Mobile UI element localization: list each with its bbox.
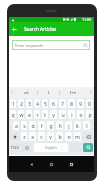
staticText: o (79, 111, 83, 118)
button[interactable]: I (38, 87, 59, 98)
button[interactable]: 8 (68, 99, 75, 108)
staticText: m (75, 133, 80, 140)
staticText: p (88, 111, 92, 118)
button[interactable]: 4 (34, 99, 40, 108)
staticText: I (48, 90, 50, 96)
staticText: ok (24, 90, 29, 96)
button[interactable]: 9 (77, 99, 84, 108)
staticText: 5 (44, 100, 47, 107)
staticText: e (28, 111, 31, 118)
button[interactable]: ?123 (10, 143, 19, 152)
staticText: w (19, 111, 24, 118)
button[interactable]: 2 (18, 99, 24, 108)
staticText: x (31, 133, 34, 140)
staticText: b (58, 133, 62, 140)
staticText: s (23, 122, 26, 129)
button[interactable]: u (59, 110, 66, 119)
staticText: 8 (70, 100, 73, 107)
staticText: 9 (79, 100, 82, 107)
staticText: z (23, 133, 26, 140)
staticText: 0 (88, 100, 91, 107)
staticText: h (58, 122, 62, 129)
button[interactable]: ok (16, 87, 37, 98)
staticText: 6 (52, 100, 55, 107)
button[interactable]: b (56, 132, 63, 141)
button[interactable]: x (29, 132, 36, 141)
staticText: d (31, 122, 35, 129)
button[interactable]: I'm (60, 87, 87, 98)
button[interactable]: v (47, 132, 54, 141)
button[interactable]: Previous suggestions (9, 87, 16, 98)
staticText: English (45, 145, 57, 150)
button[interactable]: i (68, 110, 75, 119)
button[interactable]: z (21, 132, 27, 141)
staticText: f (41, 122, 43, 129)
staticText: I'm (70, 90, 77, 96)
button[interactable]: y (50, 110, 57, 119)
staticText: a (15, 122, 18, 129)
button[interactable]: w (18, 110, 24, 119)
button[interactable]: j (65, 121, 72, 130)
staticText: i (71, 111, 73, 118)
button[interactable]: t (42, 110, 48, 119)
staticText: j (68, 122, 70, 129)
staticText: 4 (36, 100, 39, 107)
button[interactable]: h (56, 121, 63, 130)
button[interactable]: Back (9, 22, 20, 36)
button[interactable]: l (83, 121, 90, 130)
button[interactable]: d (29, 121, 36, 130)
button[interactable]: q (10, 110, 16, 119)
button[interactable]: 6 (50, 99, 57, 108)
staticText: r (36, 111, 39, 118)
button[interactable]: Search (83, 143, 93, 152)
button[interactable]: f (38, 121, 45, 130)
button[interactable]: s (21, 121, 27, 130)
staticText: 1 (12, 100, 15, 107)
button[interactable]: 7 (59, 99, 66, 108)
button[interactable]: p (86, 110, 93, 119)
button[interactable]: 1 (10, 99, 16, 108)
button[interactable]: o (77, 110, 84, 119)
button[interactable]: Backspace (83, 132, 93, 141)
staticText: k (76, 122, 79, 129)
staticText: 7 (61, 100, 64, 107)
button[interactable]: k (74, 121, 81, 130)
staticText: q (11, 111, 15, 118)
button[interactable]: e (26, 110, 32, 119)
staticText: g (49, 122, 53, 129)
button[interactable]: m (74, 132, 81, 141)
staticText: n (67, 133, 71, 140)
button[interactable]: 0 (86, 99, 93, 108)
button[interactable]: Space (34, 143, 68, 152)
button[interactable]: c (38, 132, 45, 141)
staticText: Search Articles (24, 26, 57, 32)
button[interactable]: Shift (10, 132, 19, 141)
button[interactable]: Emoji (21, 143, 32, 152)
button[interactable]: 3 (26, 99, 32, 108)
button[interactable]: 5 (42, 99, 48, 108)
button[interactable]: r (34, 110, 40, 119)
staticText: y (52, 111, 55, 118)
button[interactable]: g (47, 121, 54, 130)
button[interactable]: Back (26, 159, 37, 170)
staticText: l (86, 122, 88, 129)
staticText: c (40, 133, 43, 140)
staticText: v (49, 133, 52, 140)
staticText: Enter keywords (15, 43, 44, 48)
button[interactable]: Enter keywords (12, 40, 90, 50)
staticText: t (44, 111, 46, 118)
staticText: 11:00 (82, 17, 92, 22)
button[interactable]: More suggestions (87, 87, 94, 98)
staticText: u (61, 111, 65, 118)
button[interactable]: Home (46, 159, 57, 170)
button[interactable]: a (13, 121, 19, 130)
staticText: . (75, 145, 77, 150)
button[interactable]: Recents (66, 159, 77, 170)
staticText: ?123 (10, 145, 19, 150)
button[interactable]: n (65, 132, 72, 141)
staticText: 2 (20, 100, 23, 107)
staticText: 3 (28, 100, 31, 107)
